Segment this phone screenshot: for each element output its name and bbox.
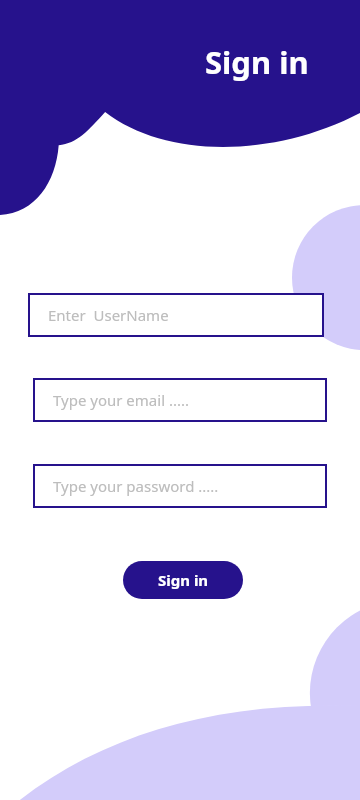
staticText: Sign in [205, 41, 309, 81]
button[interactable]: Sign in [123, 561, 243, 599]
staticText: Type your password ..... [53, 476, 219, 496]
button[interactable]: Type your password ..... [33, 464, 327, 508]
staticText: Type your email ..... [53, 390, 190, 410]
staticText: Sign in [158, 570, 209, 590]
button[interactable]: Enter UserName [28, 293, 324, 337]
button[interactable]: Type your email ..... [33, 378, 327, 422]
staticText: Enter UserName [48, 305, 169, 325]
